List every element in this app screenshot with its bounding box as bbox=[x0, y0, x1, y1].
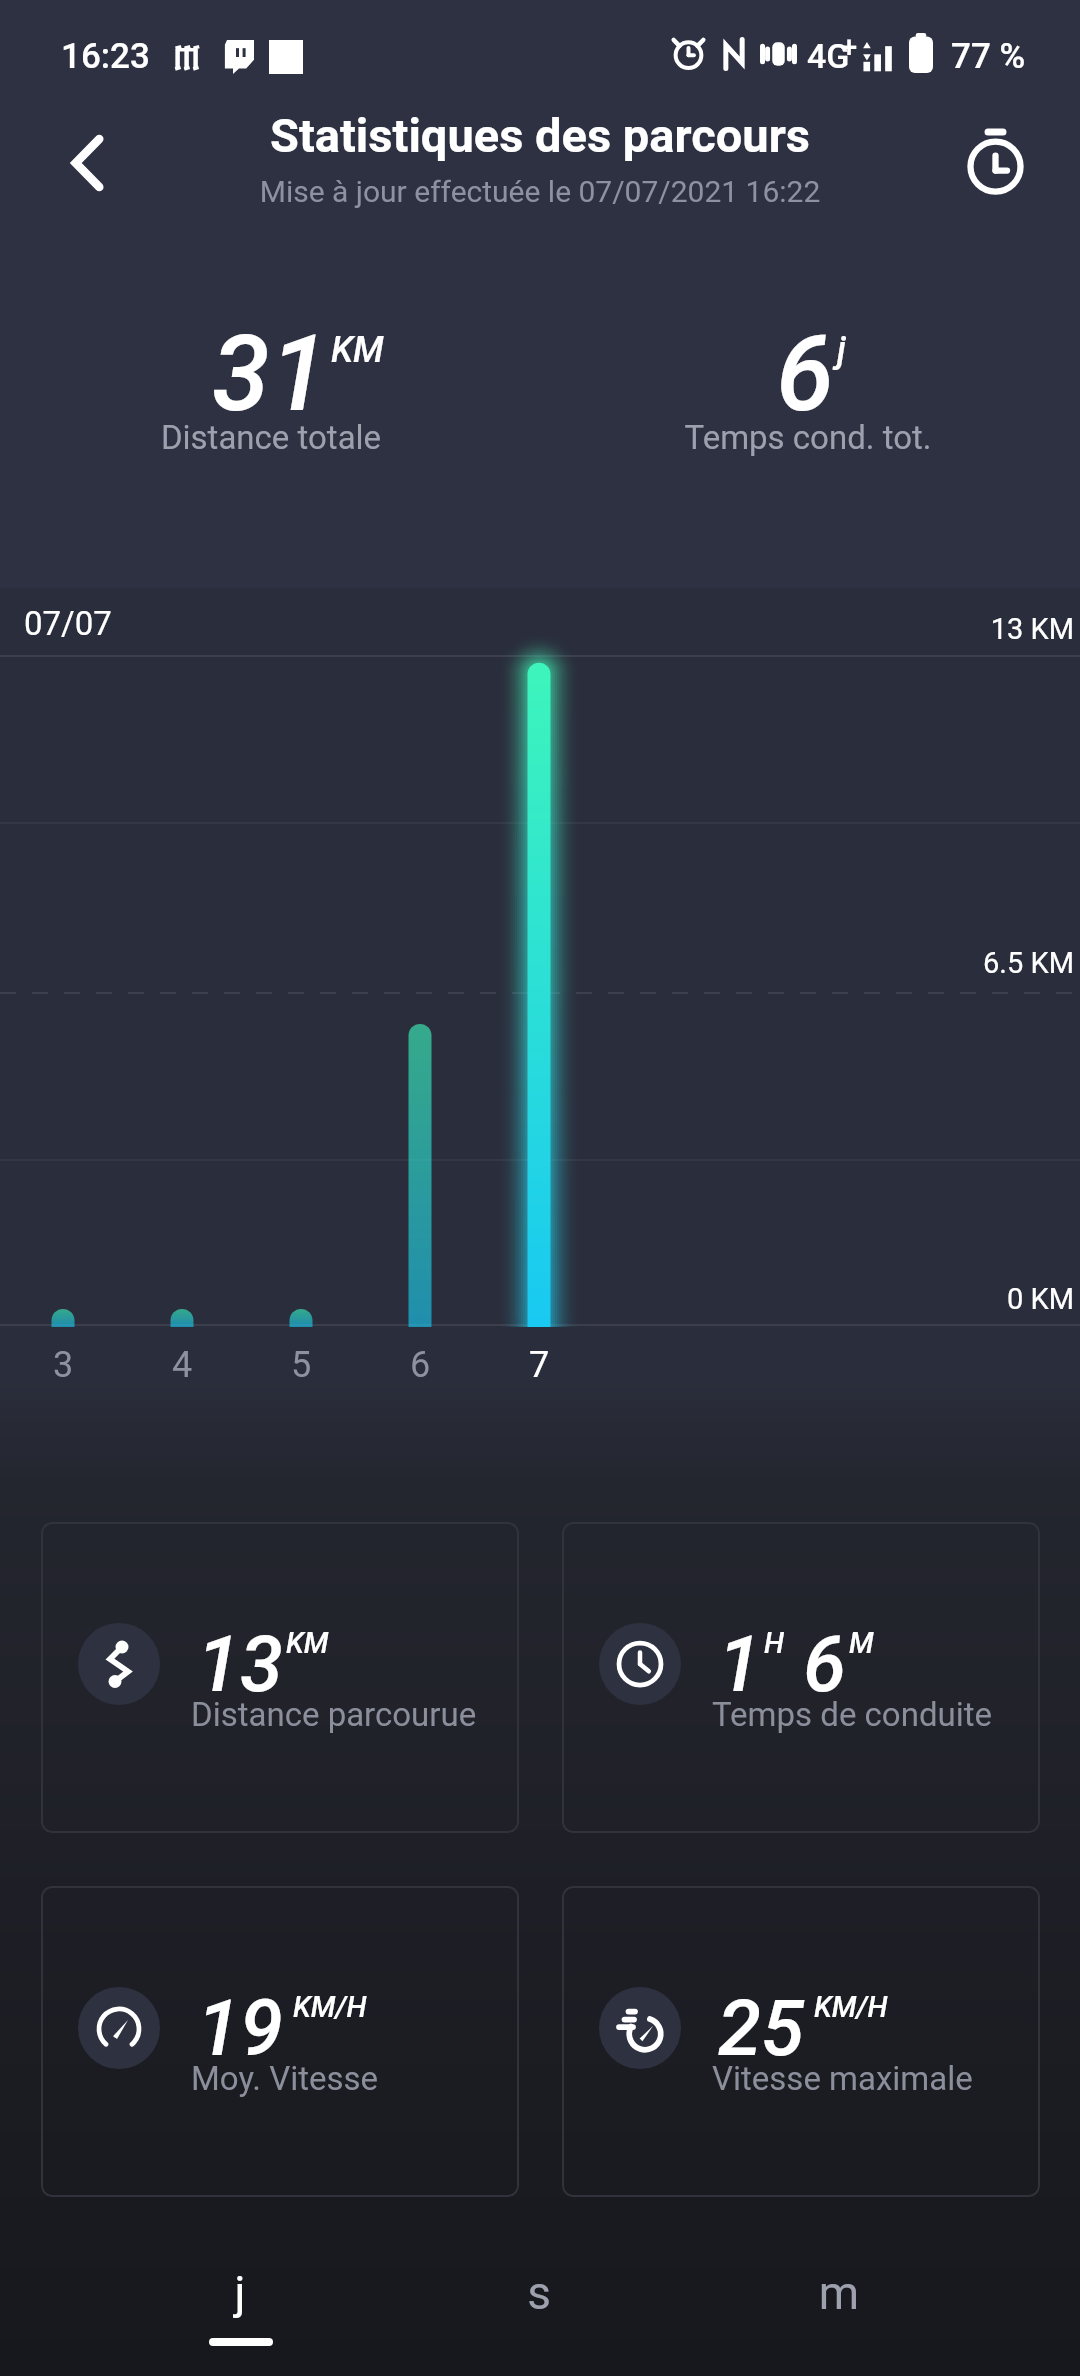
staticText: s bbox=[389, 2266, 689, 2320]
button[interactable]: s bbox=[389, 2244, 689, 2370]
staticText: 1 bbox=[718, 1619, 761, 1710]
staticText: j bbox=[837, 329, 846, 371]
button[interactable]: Chronomètre bbox=[945, 108, 1045, 204]
button[interactable]: 13 bbox=[41, 1522, 519, 1833]
staticText: 6 bbox=[390, 1344, 450, 1386]
staticText: Mise à jour effectuée le 07/07/2021 16:2… bbox=[0, 174, 1080, 209]
staticText: Moy. Vitesse bbox=[191, 2059, 379, 2098]
staticText: Statistiques des parcours bbox=[0, 108, 1080, 163]
staticText: 07/07 bbox=[24, 604, 112, 643]
staticText: 13 bbox=[197, 1619, 283, 1710]
staticText: 19 bbox=[197, 1983, 283, 2074]
staticText: KM bbox=[331, 329, 384, 371]
staticText: Distance parcourue bbox=[191, 1695, 477, 1734]
button[interactable]: 19 bbox=[41, 1886, 519, 2197]
staticText: 7 bbox=[509, 1344, 569, 1386]
button[interactable]: 1 bbox=[562, 1522, 1040, 1833]
staticText: Distance totale bbox=[21, 418, 521, 457]
staticText: 31 bbox=[212, 313, 328, 436]
staticText: Temps de conduite bbox=[712, 1695, 993, 1734]
staticText: 4G bbox=[807, 36, 850, 76]
staticText: 5 bbox=[271, 1344, 331, 1386]
staticText: 25 bbox=[718, 1983, 804, 2074]
staticText: KM/H bbox=[814, 1990, 888, 2024]
staticText: 13 KM bbox=[0, 612, 1074, 646]
button[interactable]: m bbox=[689, 2244, 989, 2370]
staticText: j bbox=[90, 2266, 390, 2320]
staticText: 3 bbox=[33, 1344, 93, 1386]
button[interactable]: Retour bbox=[28, 117, 146, 209]
staticText: 77 % bbox=[951, 36, 1026, 77]
staticText: 0 KM bbox=[0, 1282, 1074, 1316]
staticText: H bbox=[764, 1626, 784, 1660]
staticText: Vitesse maximale bbox=[712, 2059, 973, 2098]
staticText: 16:23 bbox=[61, 36, 150, 77]
button[interactable]: j bbox=[90, 2244, 390, 2370]
staticText: 6 bbox=[803, 1619, 846, 1710]
button[interactable]: 25 bbox=[562, 1886, 1040, 2197]
staticText: Temps cond. tot. bbox=[558, 418, 1058, 457]
staticText: 6 bbox=[776, 313, 834, 436]
staticText: m bbox=[689, 2266, 989, 2320]
staticText: M bbox=[849, 1626, 874, 1660]
staticText: + bbox=[841, 30, 858, 64]
staticText: KM/H bbox=[293, 1990, 367, 2024]
staticText: 4 bbox=[152, 1344, 212, 1386]
staticText: KM bbox=[286, 1626, 329, 1660]
staticText: 6.5 KM bbox=[0, 946, 1074, 980]
